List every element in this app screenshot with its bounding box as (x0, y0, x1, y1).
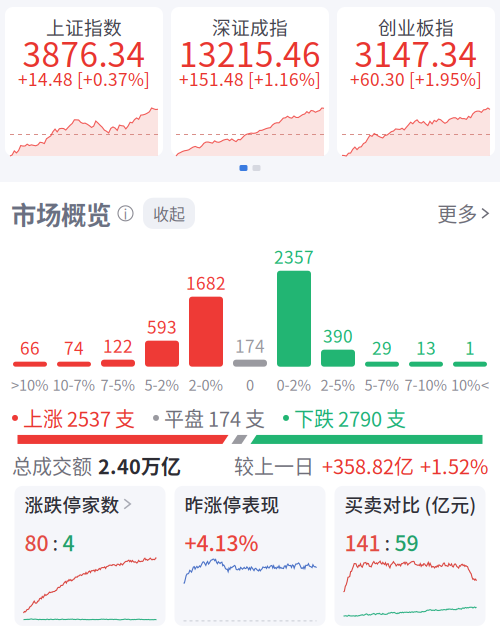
staticText: 3876.34 (22, 28, 145, 77)
staticText: 74 (64, 335, 84, 360)
staticText: 13215.46 (179, 28, 321, 77)
staticText: 593 (147, 314, 177, 339)
button[interactable]: 说明 (111, 206, 133, 221)
staticText: 66 (20, 335, 40, 360)
staticText: : (384, 527, 390, 556)
staticText: 390 (323, 323, 353, 348)
staticText: 59 (394, 526, 418, 557)
staticText: 平盘 174 支 (164, 403, 265, 432)
staticText: 收起 (153, 202, 185, 225)
staticText: 下跌 2790 支 (294, 403, 406, 432)
staticText: +4.13% (184, 526, 258, 557)
button[interactable]: 收起 (133, 198, 195, 229)
staticText: i (123, 203, 127, 223)
staticText: +14.48 [+0.37%] (18, 66, 150, 91)
staticText: 市场概览 (11, 195, 111, 232)
staticText: +151.48 [+1.16%] (179, 66, 321, 91)
staticText: 1 (465, 335, 475, 360)
staticText: 29 (372, 335, 392, 360)
staticText: 深证成指 (212, 13, 288, 40)
staticText: +1.52% (420, 451, 488, 480)
staticText: 昨涨停表现 (184, 490, 279, 517)
button[interactable]: 昨涨停表现 (174, 486, 325, 626)
staticText: 总成交额 (12, 451, 92, 480)
button[interactable]: 更多 (437, 199, 489, 228)
staticText: 2-0% (188, 374, 223, 395)
staticText: 7-5% (100, 374, 135, 395)
button[interactable]: 买卖对比 (亿元) (334, 486, 485, 626)
staticText: 141 (344, 526, 380, 557)
staticText: 上涨 2537 支 (23, 403, 135, 432)
staticText: >10% (11, 374, 49, 395)
staticText: 10-7% (52, 374, 95, 395)
staticText: 7-10% (404, 374, 447, 395)
staticText: 80 (24, 526, 48, 557)
staticText: 13 (416, 335, 436, 360)
staticText: 0 (246, 374, 254, 395)
staticText: +358.82亿 (322, 451, 414, 480)
staticText: 创业板指 (378, 13, 454, 40)
staticText: 1682 (186, 270, 226, 295)
staticText: 2.40万亿 (98, 451, 181, 480)
staticText: 122 (103, 333, 133, 358)
staticText: 涨跌停家数 (24, 490, 119, 517)
staticText: 较上一日 (234, 451, 314, 480)
staticText: 4 (62, 526, 74, 557)
staticText: 2-5% (320, 374, 355, 395)
staticText: 0-2% (276, 374, 311, 395)
staticText: 5-7% (364, 374, 399, 395)
button[interactable]: 涨跌停家数 (14, 486, 165, 626)
staticText: 10%< (451, 374, 489, 395)
staticText: 3147.34 (354, 28, 477, 77)
staticText: 5-2% (144, 374, 179, 395)
staticText: 上证指数 (46, 13, 122, 40)
staticText: 2357 (274, 244, 314, 269)
staticText: 更多 (437, 199, 477, 228)
staticText: +60.30 [+1.95%] (350, 66, 482, 91)
staticText: 174 (235, 333, 265, 358)
staticText: : (52, 527, 58, 556)
staticText: 买卖对比 (亿元) (344, 490, 476, 517)
